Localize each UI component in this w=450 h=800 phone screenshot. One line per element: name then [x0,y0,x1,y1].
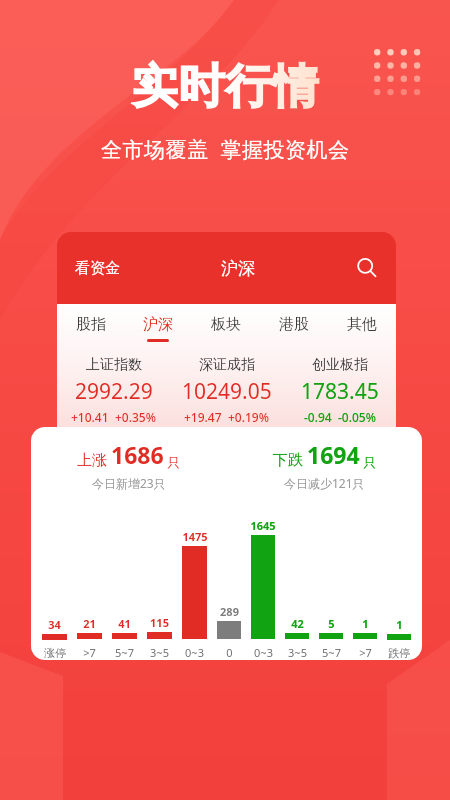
staticText: 2992.29 [75,377,153,406]
staticText: 涨幅榜 [93,465,141,485]
staticText: -0.94 [304,409,332,425]
staticText: 0 [226,645,233,660]
staticText: 41 [118,616,131,631]
staticText: 看资金 [75,259,120,278]
button[interactable]: 板块 [192,304,260,352]
button[interactable]: 看资金 [73,257,122,280]
staticText: +0.35% [115,409,156,425]
staticText: 3~5 [150,645,169,660]
staticText: 涨停 [44,646,66,660]
staticText: 涨停分析 [156,469,196,482]
staticText: 其他 [347,315,377,334]
staticText: 股指 [76,315,106,334]
staticText: +19.47 [184,409,222,425]
staticText: 更多 [339,467,365,483]
staticText: 今日新增23只 [92,475,166,491]
staticText: 115 [150,615,169,630]
staticText: 1686 [111,439,164,470]
staticText: 3~5 [288,645,307,660]
staticText: 1475 [182,529,208,544]
staticText: >7 [359,645,372,660]
staticText: 289 [220,604,239,619]
button[interactable]: 沪深 [124,304,192,352]
staticText: 上证指数 [86,356,142,374]
staticText: 42 [291,616,304,631]
staticText: 5 [328,616,335,631]
staticText: 实时行情 [131,58,319,116]
button[interactable]: 跌幅榜 [57,504,396,550]
button[interactable]: 港股 [260,304,328,352]
staticText: 港股 [279,315,309,334]
staticText: 深证成指 [199,356,255,374]
staticText: 下跌 [273,451,303,470]
staticText: 上涨 [77,451,107,470]
button[interactable]: Search [354,255,380,281]
staticText: +0.19% [228,409,269,425]
staticText: 0~3 [185,645,204,660]
staticText: 10249.05 [182,377,272,406]
staticText: 创业板指 [312,356,368,374]
staticText: 板块 [211,315,241,334]
staticText: 1 [396,617,403,632]
staticText: 1694 [307,439,360,470]
staticText: 今日减少121只 [284,475,365,491]
staticText: 跌停 [388,646,410,660]
staticText: >7 [83,645,96,660]
staticText: 5~7 [322,645,341,660]
staticText: 只 [363,454,376,470]
staticText: 0~3 [254,645,273,660]
button[interactable]: 快速涨幅 [57,556,396,602]
staticText: -0.05% [338,409,376,425]
button[interactable]: 股指 [57,304,124,352]
staticText: 沪深 [221,258,255,279]
staticText: 全市场覆盖 掌握投资机会 [101,135,350,164]
staticText: 沪深 [143,315,173,334]
staticText: 1645 [250,518,276,533]
staticText: 34 [48,617,61,632]
staticText: +10.41 [71,409,109,425]
button[interactable]: 涨幅榜 [57,452,396,498]
button[interactable]: 其他 [328,304,396,352]
staticText: 只 [167,454,180,470]
staticText: 1 [362,616,369,631]
staticText: 1783.45 [301,377,379,406]
staticText: 21 [83,616,96,631]
staticText: 5~7 [115,645,134,660]
